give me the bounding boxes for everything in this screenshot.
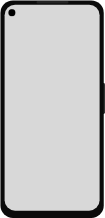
- button[interactable]: Phone device preview: [0, 0, 105, 218]
